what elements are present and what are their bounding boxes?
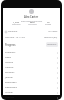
staticText: › — [57, 91, 58, 95]
staticText: › — [57, 76, 58, 80]
staticText: › — [57, 51, 58, 55]
staticText: Goals — [5, 56, 12, 59]
staticText: Streak — [45, 23, 52, 26]
button[interactable]: 86% — [28, 20, 37, 26]
staticText: Timeline — [8, 30, 18, 33]
staticText: › — [57, 56, 58, 60]
staticText: Notions — [5, 66, 14, 69]
staticText: › — [57, 61, 58, 65]
staticText: Lexicon — [5, 61, 14, 64]
staticText: 42 — [47, 20, 50, 23]
button[interactable]: Reminders — [3, 80, 60, 85]
staticText: Sessions — [5, 71, 15, 74]
button[interactable]: has note · at 11:09 — [3, 35, 60, 40]
button[interactable]: Journal — [3, 75, 60, 80]
staticText: alex.carter@mail.com — [21, 20, 43, 23]
button[interactable]: Timeline — [3, 29, 60, 34]
button[interactable]: Progress — [3, 42, 60, 47]
button[interactable]: Notions — [3, 65, 60, 70]
button[interactable]: Goals — [3, 55, 60, 60]
staticText: Dashboard — [5, 86, 17, 89]
staticText: › — [57, 81, 58, 85]
staticText: Annual — [5, 91, 13, 94]
staticText: › — [57, 71, 58, 75]
button[interactable]: Annual — [3, 90, 60, 95]
button[interactable]: Dashboard — [3, 85, 60, 90]
button[interactable]: Lexicon — [3, 60, 60, 65]
button[interactable]: 42 — [45, 20, 52, 26]
staticText: › — [57, 96, 58, 100]
button[interactable]: Controls — [3, 95, 60, 100]
staticText: Alex Carter — [24, 15, 39, 19]
staticText: US Audio — [48, 30, 58, 33]
staticText: Sessions — [12, 23, 21, 26]
staticText: Reminders — [5, 81, 17, 84]
button[interactable]: Sessions — [3, 70, 60, 75]
button[interactable]: 1,204 — [12, 20, 21, 26]
staticText: 86% — [30, 20, 35, 23]
staticText: captions (En) — [44, 36, 58, 39]
staticText: Progress — [5, 43, 16, 46]
staticText: › — [57, 86, 58, 90]
staticText: Summary — [5, 51, 16, 54]
staticText: Journal — [5, 76, 13, 79]
staticText: › — [57, 66, 58, 70]
staticText: Controls — [5, 96, 15, 99]
staticText: 1,204 — [13, 20, 20, 23]
staticText: Historical — [47, 43, 57, 46]
button[interactable]: Summary — [3, 50, 60, 55]
staticText: Accuracy — [28, 23, 37, 26]
staticText: has note · at 11:09 — [5, 36, 25, 39]
